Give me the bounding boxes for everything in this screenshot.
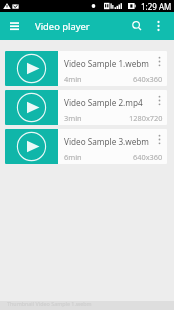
button[interactable]: Video Sample 2.mp4 [5, 90, 167, 125]
button[interactable]: More options [148, 12, 169, 40]
staticText: 640x360 [133, 152, 163, 162]
button[interactable]: Item options [153, 129, 165, 150]
button[interactable]: Video Sample 3.webm [5, 129, 167, 164]
staticText: 640x360 [133, 74, 163, 84]
staticText: Video player [35, 20, 90, 33]
button[interactable]: Search [125, 12, 148, 40]
staticText: Video Sample 3.webm [64, 136, 150, 147]
staticText: Video Sample 2.mp4 [64, 97, 143, 108]
staticText: 1280x720 [129, 113, 163, 123]
button[interactable]: Item options [153, 90, 165, 111]
button[interactable]: Item options [153, 51, 165, 72]
staticText: Video Sample 1.webm [64, 58, 150, 69]
button[interactable]: Video Sample 1.webm [5, 51, 167, 86]
staticText: 4min [64, 74, 82, 84]
staticText: Thumbnail Video Sample 1.webm [7, 300, 92, 307]
button[interactable]: Open navigation drawer [0, 12, 28, 40]
staticText: 3min [64, 113, 82, 123]
staticText: 6min [64, 152, 82, 162]
staticText: 1:29 AM [141, 1, 172, 12]
